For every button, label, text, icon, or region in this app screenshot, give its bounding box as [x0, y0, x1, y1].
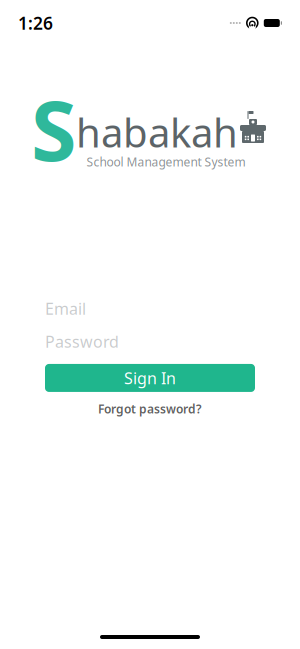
staticText: habakah [76, 105, 238, 158]
button[interactable]: Forgot password? [88, 396, 212, 422]
staticText: Sign In [124, 367, 176, 388]
button[interactable]: Password [0, 325, 300, 358]
staticText: Email [45, 298, 86, 319]
staticText: 1:26 [18, 11, 53, 34]
staticText: School Management System [86, 154, 245, 170]
staticText: Password [45, 331, 119, 352]
staticText: S [31, 74, 77, 184]
button[interactable]: Sign In [45, 364, 255, 392]
staticText: Forgot password? [98, 401, 202, 417]
button[interactable]: Email [0, 292, 300, 325]
